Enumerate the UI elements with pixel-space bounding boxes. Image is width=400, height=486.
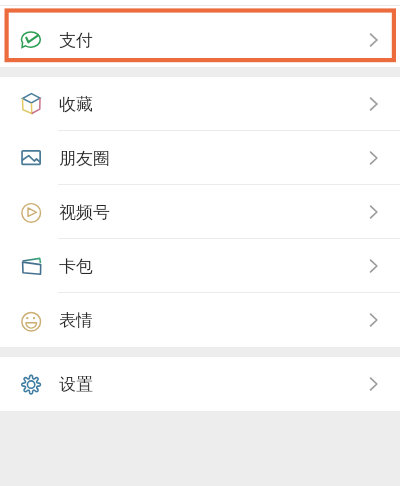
staticText: 朋友圈 xyxy=(59,148,110,169)
staticText: 收藏 xyxy=(59,94,93,115)
staticText: 表情 xyxy=(59,310,93,331)
staticText: 支付 xyxy=(59,30,93,51)
button[interactable]: 表情 xyxy=(0,293,400,347)
button[interactable]: 收藏 xyxy=(0,77,400,131)
button[interactable]: 视频号 xyxy=(0,185,400,239)
staticText: 视频号 xyxy=(59,202,110,223)
staticText: 设置 xyxy=(59,374,93,395)
button[interactable]: 支付 xyxy=(0,13,400,67)
button[interactable]: 卡包 xyxy=(0,239,400,293)
button[interactable]: 设置 xyxy=(0,357,400,411)
button[interactable]: 朋友圈 xyxy=(0,131,400,185)
staticText: 卡包 xyxy=(59,256,93,277)
